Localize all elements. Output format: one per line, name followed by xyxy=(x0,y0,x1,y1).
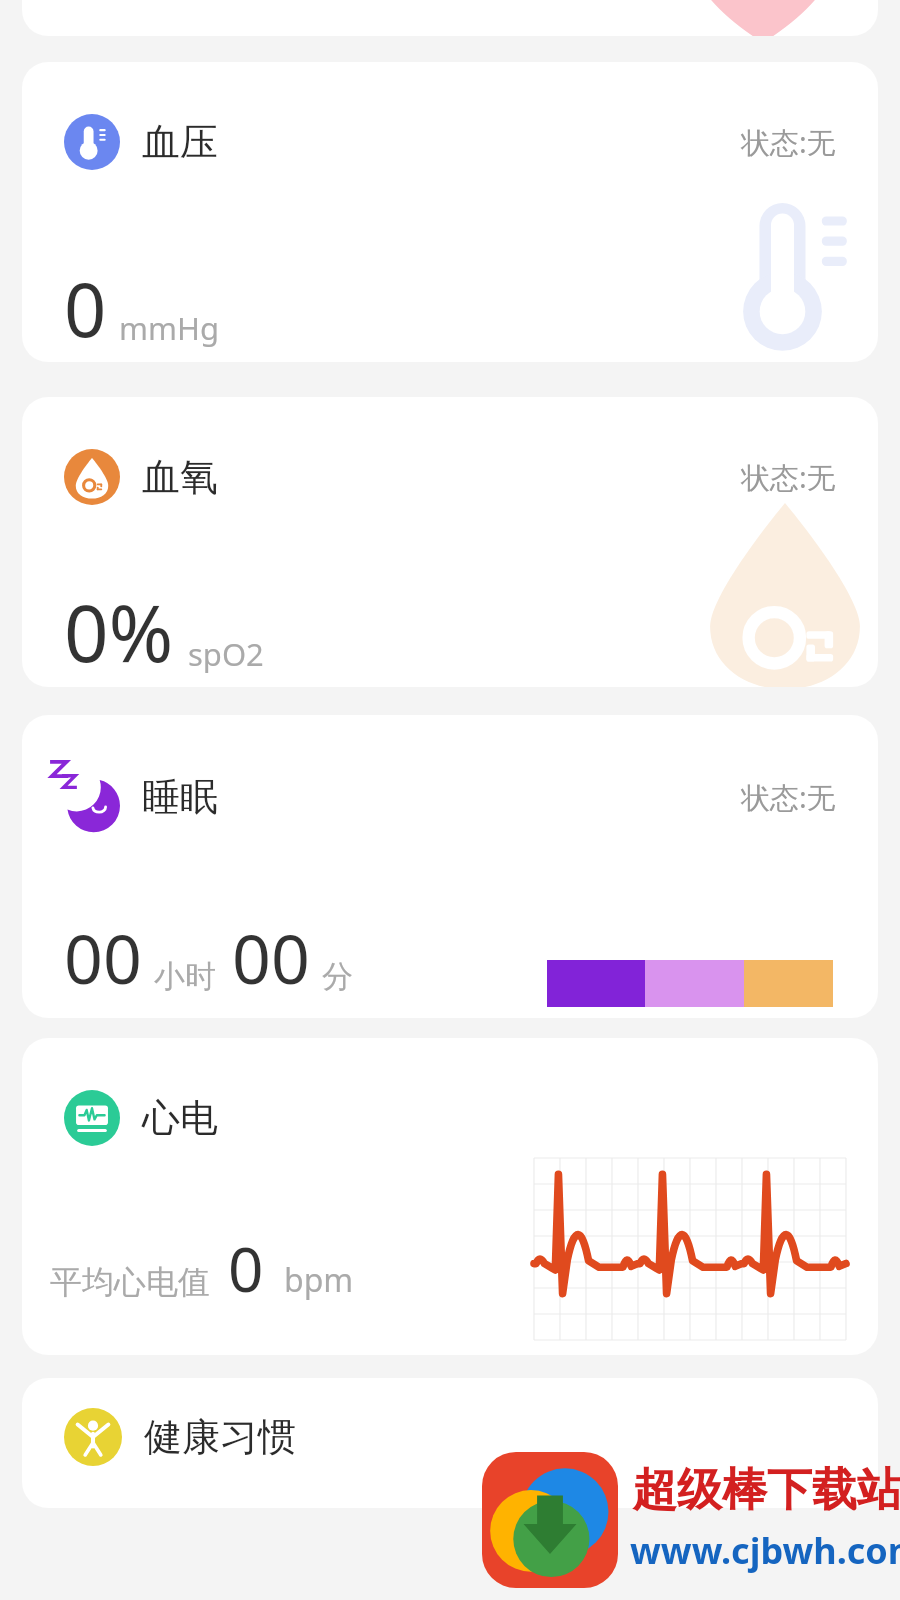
staticText: 00 xyxy=(232,911,310,1004)
button[interactable]: 血压 xyxy=(22,62,878,362)
staticText: 状态:无 xyxy=(741,122,836,162)
staticText: bpm xyxy=(284,1258,354,1302)
button[interactable]: 睡眠 xyxy=(22,715,878,1018)
button[interactable]: 心电 xyxy=(22,1038,878,1355)
staticText: 分 xyxy=(322,957,353,996)
staticText: 0 xyxy=(64,258,107,359)
staticText: 血氧 xyxy=(142,453,218,501)
staticText: www.cjbwh.com xyxy=(630,1526,900,1575)
staticText: 睡眠 xyxy=(142,773,218,821)
staticText: 血压 xyxy=(142,118,218,166)
staticText: 超级棒下载站 xyxy=(632,1462,900,1519)
staticText: 心电 xyxy=(142,1094,218,1142)
staticText: 状态:无 xyxy=(741,457,836,497)
other: 血氧 xyxy=(64,449,120,505)
staticText: 平均心电值 xyxy=(50,1262,210,1302)
staticText: mmHg xyxy=(119,307,220,349)
staticText: spO2 xyxy=(188,633,264,675)
other: 健康习惯 xyxy=(64,1408,122,1466)
other: 心电 xyxy=(64,1090,120,1146)
button[interactable]: 血氧 xyxy=(22,397,878,687)
staticText: 状态:无 xyxy=(741,777,836,817)
other: 睡眠 xyxy=(48,757,128,837)
button[interactable]: BPM xyxy=(22,0,878,36)
button[interactable]: 健康习惯 xyxy=(22,1378,878,1508)
staticText: 0% xyxy=(64,579,174,685)
staticText: 00 xyxy=(64,911,142,1004)
staticText: 小时 xyxy=(154,957,216,996)
staticText: 0 xyxy=(228,1226,264,1310)
staticText: 健康习惯 xyxy=(144,1413,296,1461)
other: 血压 xyxy=(64,114,120,170)
